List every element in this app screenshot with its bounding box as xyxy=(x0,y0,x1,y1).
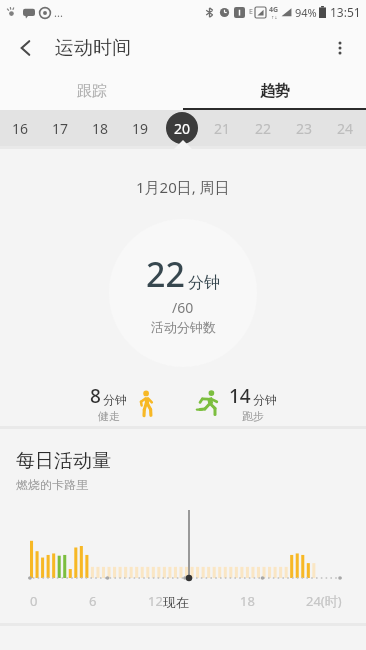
staticText: 分钟 xyxy=(188,273,220,293)
button[interactable]: 18 xyxy=(80,110,120,146)
button[interactable]: 跟踪 xyxy=(0,72,183,110)
staticText: 分钟 xyxy=(253,392,277,407)
button[interactable]: 16 xyxy=(0,110,40,146)
button[interactable]: 22 xyxy=(109,219,257,367)
staticText: ↑↓ xyxy=(271,15,278,20)
button[interactable]: 24 xyxy=(325,110,366,146)
staticText: 18 xyxy=(240,592,255,610)
staticText: 22 xyxy=(146,251,185,297)
staticText: 8 xyxy=(90,383,101,409)
staticText: 4G xyxy=(269,5,279,15)
staticText: 19 xyxy=(132,119,149,138)
button[interactable]: 更多选项 xyxy=(318,26,362,70)
staticText: 跟踪 xyxy=(77,82,107,101)
staticText: 燃烧的卡路里 xyxy=(16,477,88,492)
staticText: 17 xyxy=(52,119,69,138)
staticText: 现在 xyxy=(163,594,189,610)
button[interactable]: 8 xyxy=(90,383,162,423)
staticText: 运动时间 xyxy=(55,36,131,60)
staticText: 14 xyxy=(229,383,251,409)
button[interactable]: 14 xyxy=(194,383,277,423)
staticText: E xyxy=(249,7,253,17)
staticText: 0 xyxy=(30,592,38,610)
button[interactable]: 21 xyxy=(202,110,243,146)
staticText: 18 xyxy=(92,119,109,138)
staticText: 22 xyxy=(255,119,272,138)
button[interactable]: 23 xyxy=(284,110,325,146)
button[interactable]: 返回 xyxy=(4,26,48,70)
button[interactable]: 趋势 xyxy=(183,72,366,110)
staticText: 13:51 xyxy=(330,4,361,20)
staticText: 16 xyxy=(12,119,29,138)
staticText: 23 xyxy=(296,119,313,138)
staticText: 跑步 xyxy=(242,409,264,423)
staticText: 健走 xyxy=(98,409,120,423)
staticText: 94% xyxy=(295,5,317,20)
staticText: 6 xyxy=(89,592,97,610)
staticText: 24(时) xyxy=(306,592,342,610)
staticText: 21 xyxy=(214,119,231,138)
staticText: 20 xyxy=(174,119,191,138)
button[interactable]: 20 xyxy=(161,110,202,146)
button[interactable]: 22 xyxy=(243,110,284,146)
staticText: 活动分钟数 xyxy=(151,319,216,335)
staticText: /60 xyxy=(172,298,194,317)
staticText: 1月20日, 周日 xyxy=(136,177,230,197)
staticText: 每日活动量 xyxy=(16,449,111,473)
staticText: 24 xyxy=(337,119,354,138)
staticText: ... xyxy=(54,5,63,20)
staticText: 趋势 xyxy=(260,82,290,101)
staticText: 分钟 xyxy=(103,392,127,407)
staticText: 12 xyxy=(148,592,163,610)
button[interactable]: 17 xyxy=(40,110,80,146)
button[interactable]: 19 xyxy=(120,110,161,146)
